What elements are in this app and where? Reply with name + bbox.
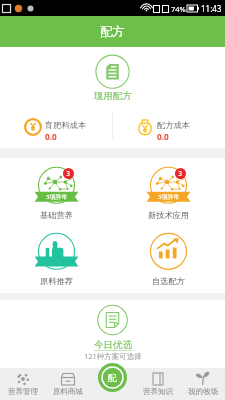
staticText: 基础营养 [40, 210, 73, 220]
button[interactable]: 营养知识 [135, 368, 180, 400]
staticText: 3项异常 [158, 193, 180, 201]
staticText: 原料商城 [53, 387, 83, 396]
staticText: 3 [66, 169, 71, 179]
staticText: 新技术应用 [148, 210, 189, 220]
staticText: 0.0 [45, 131, 57, 142]
button[interactable]: 育肥料成本 [0, 108, 112, 146]
button[interactable]: 营养管理 [0, 368, 45, 400]
staticText: 11:43 [201, 3, 222, 14]
staticText: 配方 [100, 24, 125, 40]
button[interactable]: 现用配方 [78, 52, 147, 101]
button[interactable]: 今日优选 [72, 303, 153, 363]
button[interactable]: 原料商城 [45, 368, 90, 400]
staticText: 营养知识 [143, 387, 173, 396]
staticText: 我的牧场 [188, 387, 218, 396]
staticText: 3项异常 [46, 193, 68, 201]
staticText: 3 [178, 169, 183, 179]
button[interactable]: 我的牧场 [180, 368, 225, 400]
button[interactable]: 自选配方 [134, 231, 203, 287]
button[interactable]: 配方成本 [112, 108, 225, 146]
button[interactable]: 原料推荐 [22, 231, 91, 287]
staticText: 74% [171, 4, 186, 14]
staticText: 配 [108, 372, 117, 383]
staticText: 自选配方 [152, 276, 185, 286]
button[interactable]: 配方 [98, 363, 127, 392]
staticText: 育肥料成本 [45, 120, 86, 130]
staticText: 今日优选 [94, 339, 132, 351]
staticText: 现用配方 [94, 90, 132, 102]
button[interactable]: 3项异常 [134, 165, 203, 221]
button[interactable]: 3项异常 [22, 165, 91, 221]
staticText: 配方成本 [157, 120, 190, 130]
staticText: 原料推荐 [40, 276, 73, 286]
staticText: 121种方案可选择 [84, 351, 142, 361]
staticText: 0.0 [157, 131, 169, 142]
staticText: 营养管理 [8, 387, 38, 396]
